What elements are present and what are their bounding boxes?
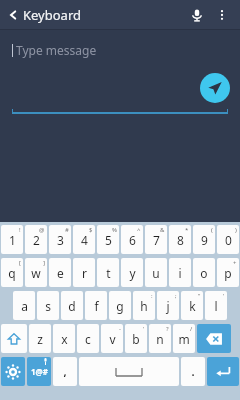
staticText: 1@# [31, 366, 48, 377]
button[interactable]: y [121, 258, 143, 287]
button[interactable]: r [73, 258, 95, 287]
staticText: 2 [33, 232, 40, 248]
button[interactable]: s [37, 291, 59, 320]
button[interactable]: j [157, 291, 179, 320]
staticText: & [160, 226, 165, 234]
staticText: - [119, 325, 121, 333]
staticText: ( [211, 226, 213, 234]
staticText: # [65, 226, 69, 234]
staticText: 8 [177, 232, 184, 248]
button[interactable]: 3 [49, 225, 71, 254]
staticText: a [21, 298, 28, 314]
staticText: * [185, 226, 189, 234]
staticText: y [129, 265, 136, 281]
button[interactable]: f [85, 291, 107, 320]
staticText: 3 [57, 232, 64, 248]
button[interactable]: v [101, 324, 123, 353]
button[interactable]: q [1, 258, 23, 287]
staticText: 1 [9, 232, 16, 248]
button[interactable]: z [29, 324, 51, 353]
button[interactable] [1, 324, 27, 353]
button[interactable]: e [49, 258, 71, 287]
staticText: ' [143, 325, 145, 333]
button[interactable]: Voice input [184, 2, 210, 28]
button[interactable]: l [205, 291, 227, 320]
staticText: ^ [137, 226, 141, 234]
staticText: ' [223, 292, 225, 300]
button[interactable] [1, 357, 25, 386]
staticText: d [68, 298, 76, 314]
button[interactable]: 6 [121, 225, 143, 254]
staticText: v [109, 331, 116, 347]
staticText: b [132, 331, 140, 347]
button[interactable]: p [217, 258, 239, 287]
staticText: . [191, 364, 195, 379]
staticText: o [200, 265, 208, 281]
staticText: 5 [105, 232, 112, 248]
staticText: ; [175, 292, 177, 300]
staticText: x [61, 331, 68, 347]
staticText: p [224, 265, 232, 281]
staticText: : [151, 292, 153, 300]
staticText: i [178, 265, 182, 281]
staticText: e [57, 265, 64, 281]
staticText: u [152, 265, 160, 281]
staticText: k [189, 298, 196, 314]
staticText: / [190, 325, 193, 333]
button[interactable]: Send [200, 73, 230, 103]
staticText: [ [19, 259, 21, 267]
button[interactable]: More options [210, 3, 234, 27]
button[interactable]: 2 [25, 225, 47, 254]
button[interactable] [197, 324, 231, 353]
button[interactable]: m [173, 324, 195, 353]
staticText: 9 [201, 232, 208, 248]
staticText: Keyboard [23, 6, 82, 24]
staticText: 7 [153, 232, 160, 248]
staticText: r [82, 265, 87, 281]
staticText: j [166, 298, 170, 314]
staticText: h [140, 298, 148, 314]
button[interactable]: , [53, 357, 77, 386]
button[interactable]: 1 [1, 225, 23, 254]
button[interactable]: 8 [169, 225, 191, 254]
button[interactable] [79, 357, 179, 386]
staticText: + [233, 259, 237, 267]
button[interactable]: x [53, 324, 75, 353]
button[interactable]: 0 [217, 225, 239, 254]
staticText: ! [19, 226, 21, 234]
button[interactable]: u [145, 258, 167, 287]
staticText: z [37, 331, 43, 347]
button[interactable]: 7 [145, 225, 167, 254]
staticText: , [63, 364, 67, 379]
staticText: c [85, 331, 91, 347]
button[interactable]: t [97, 258, 119, 287]
button[interactable]: 9 [193, 225, 215, 254]
button[interactable]: i [169, 258, 191, 287]
staticText: Type message [16, 42, 97, 58]
staticText: f [94, 298, 99, 314]
button[interactable]: h [133, 291, 155, 320]
staticText: s [45, 298, 51, 314]
button[interactable]: a [13, 291, 35, 320]
button[interactable]: 5 [97, 225, 119, 254]
button[interactable]: Keyboard [8, 6, 86, 24]
staticText: ) [235, 226, 237, 234]
staticText: ] [43, 259, 45, 267]
button[interactable]: 4 [73, 225, 95, 254]
button[interactable]: c [77, 324, 99, 353]
staticText: $ [89, 226, 93, 234]
button[interactable]: b [125, 324, 147, 353]
staticText: ? [166, 325, 169, 333]
button[interactable] [207, 357, 239, 386]
button[interactable]: d [61, 291, 83, 320]
button[interactable]: 1@# [27, 357, 51, 386]
staticText: q [8, 265, 16, 281]
button[interactable]: n [149, 324, 171, 353]
button[interactable]: w [25, 258, 47, 287]
staticText: " [198, 292, 201, 300]
staticText: % [112, 226, 117, 234]
button[interactable]: k [181, 291, 203, 320]
button[interactable]: g [109, 291, 131, 320]
button[interactable]: . [181, 357, 205, 386]
button[interactable]: o [193, 258, 215, 287]
